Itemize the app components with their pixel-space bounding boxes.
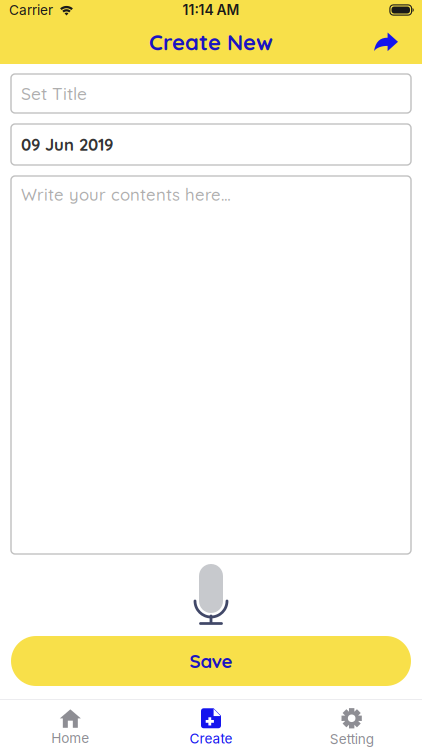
button[interactable]: Setting bbox=[281, 698, 422, 750]
button[interactable]: Create bbox=[141, 698, 281, 750]
button[interactable]: Home bbox=[0, 699, 141, 750]
staticText: Create New bbox=[149, 28, 273, 56]
staticText: Home bbox=[51, 730, 89, 746]
staticText: Create bbox=[189, 730, 232, 747]
button[interactable]: Save bbox=[11, 636, 411, 686]
button[interactable]: Share bbox=[364, 20, 422, 64]
staticText: Save bbox=[189, 649, 232, 673]
staticText: 09 Jun 2019 bbox=[21, 134, 113, 155]
staticText: Setting bbox=[330, 731, 374, 747]
staticText: Carrier bbox=[9, 2, 53, 18]
staticText: Set Title bbox=[21, 83, 87, 104]
staticText: 11:14 AM bbox=[182, 2, 239, 18]
staticText: Write your contents here… bbox=[21, 184, 231, 205]
